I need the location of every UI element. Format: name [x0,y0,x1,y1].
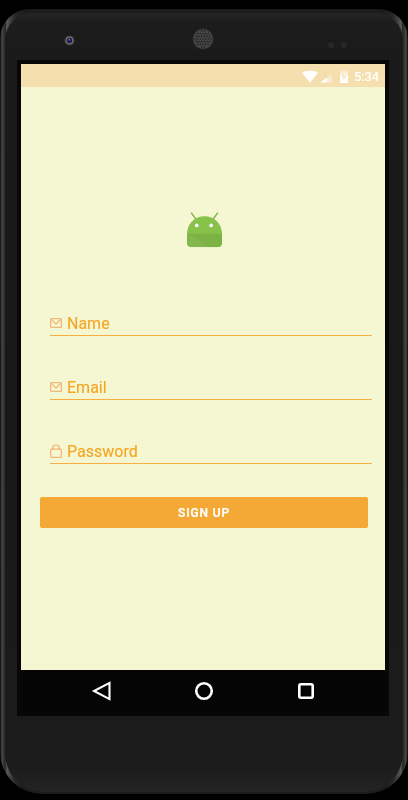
button[interactable]: Home [181,670,226,712]
button[interactable]: Recent apps [283,670,328,712]
button[interactable]: Back [79,670,124,712]
button[interactable]: SIGN UP [40,497,368,528]
staticText: SIGN UP [178,506,231,520]
staticText: 5:34 [354,69,380,84]
button[interactable]: Password [50,436,372,465]
staticText: Password [67,442,138,461]
staticText: Email [67,378,107,397]
button[interactable]: Name [50,308,372,337]
staticText: Name [67,314,110,333]
button[interactable]: Email [50,372,372,401]
